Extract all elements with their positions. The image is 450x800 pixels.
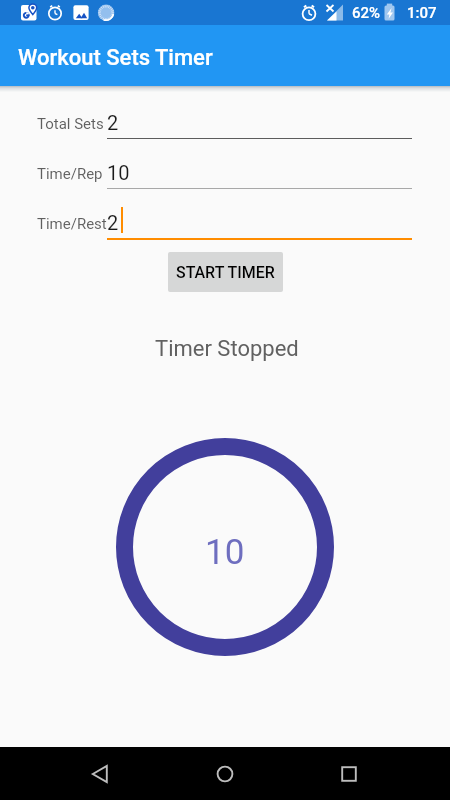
staticText: 1:07 — [407, 4, 437, 22]
button[interactable]: Total Sets — [107, 100, 412, 140]
staticText: 2 — [107, 211, 119, 234]
button[interactable]: Time/Rep — [107, 150, 412, 190]
staticText: Workout Sets Timer — [18, 45, 213, 71]
button[interactable]: Back — [76, 750, 124, 798]
staticText: Time/Rest — [37, 215, 107, 233]
button[interactable]: Time/Rest — [107, 200, 412, 240]
button[interactable]: START TIMER — [168, 252, 283, 292]
button[interactable]: Recents — [325, 750, 373, 798]
staticText: 2 — [107, 111, 119, 134]
staticText: 10 — [107, 161, 130, 184]
staticText: Timer Stopped — [155, 336, 299, 362]
staticText: 62% — [352, 4, 381, 22]
staticText: Time/Rep — [37, 165, 103, 183]
staticText: Total Sets — [37, 115, 104, 133]
staticText: 10 — [205, 532, 245, 573]
button[interactable]: Home — [201, 750, 249, 798]
staticText: START TIMER — [176, 263, 275, 282]
